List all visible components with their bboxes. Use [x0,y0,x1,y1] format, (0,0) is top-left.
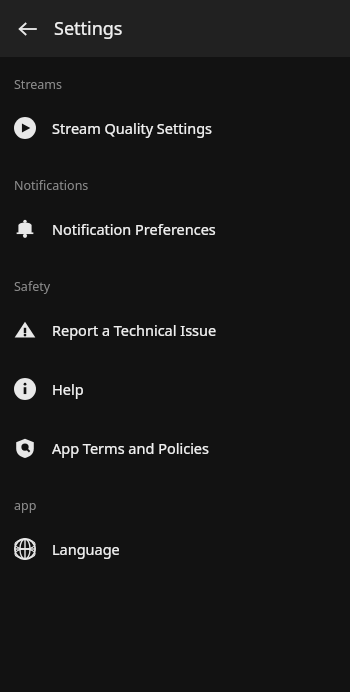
staticText: Language [52,539,120,559]
button[interactable]: Help [0,366,350,412]
staticText: Help [52,379,84,399]
button[interactable]: Back [13,14,43,44]
staticText: App Terms and Policies [52,438,209,458]
button[interactable]: Language [0,526,350,572]
staticText: Notifications [14,177,89,194]
button[interactable]: Report a Technical Issue [0,307,350,353]
staticText: Streams [14,76,63,93]
staticText: Safety [14,278,51,295]
staticText: Notification Preferences [52,219,216,239]
button[interactable]: App Terms and Policies [0,425,350,471]
button[interactable]: Stream Quality Settings [0,105,350,151]
staticText: app [14,497,37,514]
button[interactable]: Notification Preferences [0,206,350,252]
staticText: Report a Technical Issue [52,320,217,340]
staticText: Stream Quality Settings [52,118,213,138]
staticText: Settings [54,16,123,41]
